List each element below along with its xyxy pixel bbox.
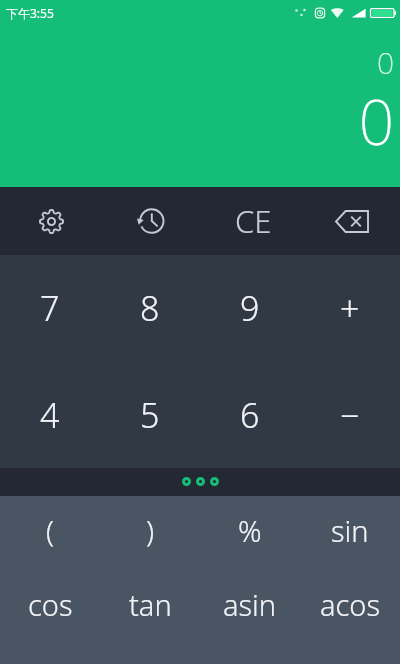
staticText: 4 [40, 392, 60, 438]
staticText: ) [146, 511, 155, 550]
staticText: asin [223, 585, 277, 624]
staticText: 9 [240, 285, 260, 331]
button[interactable]: Backspace [300, 187, 400, 255]
button[interactable]: 7 [0, 255, 100, 361]
staticText: 8 [140, 285, 160, 331]
staticText: 7 [40, 285, 60, 331]
button[interactable]: ( [0, 496, 100, 570]
staticText: % [238, 511, 262, 550]
button[interactable]: CE [200, 187, 300, 255]
button[interactable]: asin [200, 570, 300, 644]
staticText: tan [129, 585, 172, 624]
staticText: 6 [240, 392, 260, 438]
staticText: cos [28, 585, 73, 624]
staticText: + [340, 285, 360, 331]
staticText: − [340, 392, 360, 438]
button[interactable]: 9 [200, 255, 300, 361]
button[interactable]: 8 [100, 255, 200, 361]
button[interactable]: % [200, 496, 300, 570]
button[interactable]: tan [100, 570, 200, 644]
button[interactable]: Settings [0, 187, 100, 255]
button[interactable]: acos [300, 570, 400, 644]
staticText: CE [235, 200, 272, 242]
staticText: 0 [376, 42, 394, 83]
button[interactable]: sin [300, 496, 400, 570]
staticText: ( [46, 511, 55, 550]
button[interactable]: 6 [200, 361, 300, 468]
button[interactable]: 5 [100, 361, 200, 468]
staticText: 0 [358, 79, 394, 163]
staticText: 5 [140, 392, 160, 438]
staticText: 下午3:55 [6, 5, 54, 21]
staticText: acos [320, 585, 381, 624]
staticText: sin [331, 511, 369, 550]
button[interactable]: + [300, 255, 400, 361]
button[interactable]: History [100, 187, 200, 255]
button[interactable]: ) [100, 496, 200, 570]
button[interactable]: 4 [0, 361, 100, 468]
button[interactable]: − [300, 361, 400, 468]
button[interactable]: cos [0, 570, 100, 644]
